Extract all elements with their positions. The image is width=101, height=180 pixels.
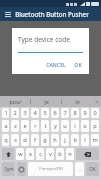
button[interactable]: 1 <box>2 108 9 118</box>
staticText: h <box>53 136 57 144</box>
button[interactable]: Open navigation menu <box>3 10 12 19</box>
button[interactable]: f <box>31 134 39 146</box>
staticText: . <box>79 165 81 173</box>
staticText: 2 <box>13 109 17 117</box>
button[interactable]: r <box>31 120 39 132</box>
button[interactable]: o <box>81 120 89 132</box>
staticText: Français(FR) <box>39 166 63 172</box>
button[interactable]: je <box>31 96 61 107</box>
staticText: a <box>4 122 8 130</box>
button[interactable]: 4 <box>31 108 39 118</box>
button[interactable]: q <box>2 134 9 146</box>
staticText: 4 <box>33 109 37 117</box>
button[interactable]: b <box>56 148 64 160</box>
button[interactable]: x <box>26 148 34 160</box>
button[interactable]: 5 <box>41 108 49 118</box>
button[interactable]: l <box>81 134 89 146</box>
button[interactable]: v <box>46 148 54 160</box>
button[interactable]: pour <box>0 96 30 107</box>
staticText: v <box>49 150 52 158</box>
staticText: OK <box>74 61 82 68</box>
staticText: 7 <box>63 109 67 117</box>
button[interactable]: More suggestions <box>92 96 101 107</box>
staticText: 3 <box>23 109 27 117</box>
staticText: t <box>44 122 47 130</box>
button[interactable]: j <box>61 134 69 146</box>
staticText: r <box>34 122 37 130</box>
button[interactable]: d <box>21 134 29 146</box>
button[interactable]: p <box>91 120 99 132</box>
staticText: n <box>68 150 72 158</box>
button[interactable]: t <box>41 120 49 132</box>
button[interactable]: Space <box>28 162 73 176</box>
button[interactable]: Backspace <box>76 148 99 160</box>
button[interactable]: h <box>51 134 59 146</box>
staticText: OK <box>89 166 96 172</box>
button[interactable]: n <box>66 148 74 160</box>
staticText: f <box>34 136 36 144</box>
staticText: 9 <box>83 109 87 117</box>
button[interactable]: OK <box>86 162 99 176</box>
button[interactable]: m <box>91 134 99 146</box>
staticText: Type device code <box>18 35 70 44</box>
staticText: k <box>74 136 77 144</box>
staticText: le <box>75 98 80 105</box>
button[interactable]: Sym <box>2 162 15 176</box>
staticText: Bluetooth Button Pusher <box>15 10 89 18</box>
staticText: q <box>4 136 8 144</box>
staticText: je <box>44 98 49 105</box>
staticText: u <box>63 122 67 130</box>
staticText: 8 <box>73 109 77 117</box>
staticText: j <box>64 136 66 144</box>
staticText: c <box>39 150 42 158</box>
staticText: 0 <box>93 109 97 117</box>
button[interactable]: 7 <box>61 108 69 118</box>
button[interactable]: 2 <box>11 108 19 118</box>
button[interactable]: k <box>71 134 79 146</box>
button[interactable]: z <box>11 120 19 132</box>
button[interactable]: Shift <box>2 148 14 160</box>
staticText: w <box>18 150 23 158</box>
button[interactable]: 3 <box>21 108 29 118</box>
button[interactable]: le <box>62 96 92 107</box>
staticText: Sym <box>4 166 14 172</box>
button[interactable]: w <box>16 148 24 160</box>
staticText: z <box>14 122 17 130</box>
button[interactable]: u <box>61 120 69 132</box>
staticText: m <box>92 136 98 144</box>
button[interactable]: 6 <box>51 108 59 118</box>
button[interactable]: CANCEL <box>43 59 69 70</box>
staticText: 5 <box>43 109 47 117</box>
button[interactable]: g <box>41 134 49 146</box>
staticText: i <box>74 122 76 130</box>
staticText: CANCEL <box>46 61 66 68</box>
staticText: b <box>58 150 62 158</box>
button[interactable]: s <box>11 134 19 146</box>
button[interactable]: y <box>51 120 59 132</box>
button[interactable]: 0 <box>91 108 99 118</box>
staticText: s <box>14 136 17 144</box>
button[interactable]: 9 <box>81 108 89 118</box>
staticText: y <box>54 122 57 130</box>
staticText: o <box>83 122 87 130</box>
staticText: x <box>29 150 32 158</box>
button[interactable]: Emoji <box>17 162 26 176</box>
staticText: 6 <box>53 109 57 117</box>
staticText: pour <box>9 98 22 105</box>
button[interactable]: a <box>2 120 9 132</box>
button[interactable]: c <box>36 148 44 160</box>
button[interactable]: . <box>75 162 84 176</box>
staticText: d <box>23 136 27 144</box>
button[interactable]: OK <box>71 59 85 70</box>
staticText: e <box>23 122 27 130</box>
button[interactable]: i <box>71 120 79 132</box>
button[interactable]: 8 <box>71 108 79 118</box>
staticText: g <box>43 136 47 144</box>
staticText: p <box>93 122 97 130</box>
staticText: 1 <box>4 109 8 117</box>
staticText: > <box>95 98 99 106</box>
button[interactable]: e <box>21 120 29 132</box>
staticText: l <box>84 136 86 144</box>
